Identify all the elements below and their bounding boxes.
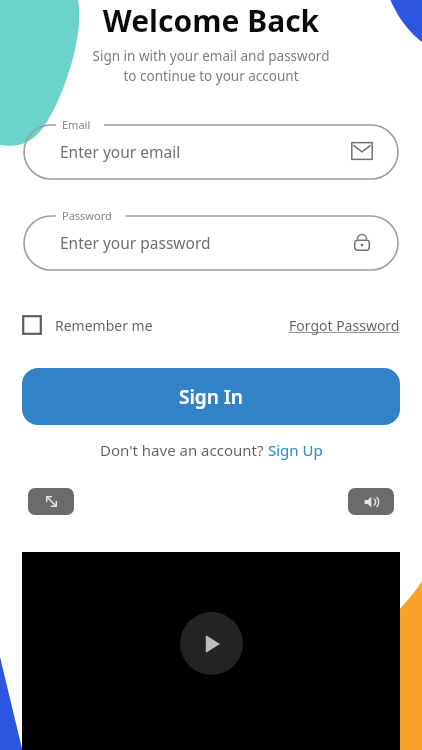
button[interactable]: Password bbox=[22, 208, 400, 270]
button[interactable]: Fullscreen bbox=[28, 488, 74, 515]
button[interactable]: Forgot Password bbox=[289, 310, 400, 341]
staticText: Remember me bbox=[55, 316, 153, 335]
staticText: Don't have an account? bbox=[100, 440, 268, 460]
button[interactable]: Play bbox=[180, 612, 243, 675]
staticText: Sign In bbox=[179, 384, 243, 410]
staticText: Enter your password bbox=[60, 232, 211, 253]
staticText: Email bbox=[62, 117, 91, 132]
staticText: Sign Up bbox=[268, 440, 323, 460]
staticText: Enter your email bbox=[60, 141, 181, 162]
button[interactable]: Remember me bbox=[22, 309, 153, 341]
button[interactable]: Sign In bbox=[22, 368, 400, 425]
button[interactable]: Volume bbox=[348, 488, 394, 515]
staticText: Welcome Back bbox=[0, 0, 422, 41]
staticText: Password bbox=[62, 208, 112, 223]
staticText: Sign in with your email and password to … bbox=[0, 47, 422, 85]
staticText: Forgot Password bbox=[289, 316, 400, 335]
button[interactable]: Sign Up bbox=[268, 440, 323, 460]
button[interactable]: Email bbox=[22, 117, 400, 179]
button[interactable]: Play bbox=[22, 552, 400, 750]
